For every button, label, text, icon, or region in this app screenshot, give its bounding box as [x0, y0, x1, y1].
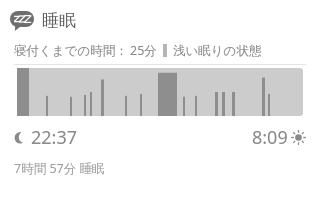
staticText: 7時間 57分 睡眠 — [14, 160, 105, 177]
staticText: 浅い眠りの状態 — [173, 43, 262, 59]
staticText: 8:09 — [252, 125, 288, 150]
staticText: 睡眠 — [42, 10, 76, 31]
other: 睡眠アイコン — [10, 11, 34, 31]
staticText: 22:37 — [31, 125, 78, 150]
staticText: 寝付くまでの時間： — [14, 43, 128, 59]
button[interactable]: 睡眠アイコン — [0, 8, 320, 33]
button[interactable]: 22:37 — [14, 125, 78, 150]
button[interactable]: 睡眠グラフ — [17, 68, 303, 116]
button[interactable]: 8:09 — [252, 125, 306, 150]
staticText: 25分 — [130, 42, 157, 59]
